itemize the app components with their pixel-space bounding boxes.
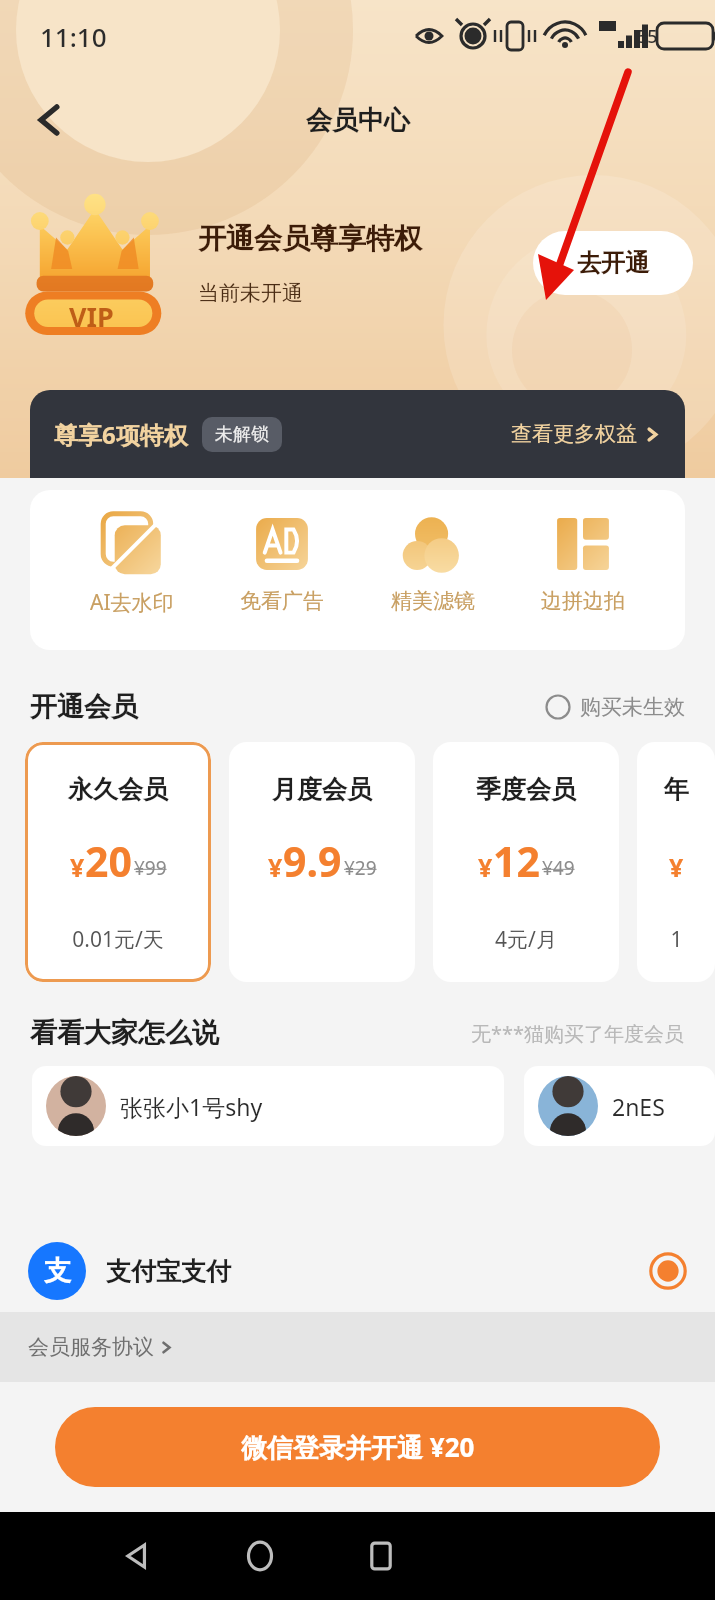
button[interactable]: Purchase not active help [545,694,685,720]
button[interactable]: 年 [637,742,715,982]
staticText: 免看广告 [240,588,324,614]
staticText: 永久会员 [68,774,168,805]
staticText: ¥ [669,850,684,884]
staticText: 0.01元/天 [72,925,164,954]
staticText: 2nES [612,1091,665,1122]
staticText: 年 [664,774,689,805]
button[interactable]: Back [24,94,76,146]
staticText: 月度会员 [272,774,372,805]
button[interactable]: 张张小1号shy [32,1066,504,1146]
staticText: VIP [69,298,114,335]
staticText: 会员服务协议 [28,1334,154,1360]
staticText: 未解锁 [215,423,269,446]
staticText: 支付宝支付 [106,1256,231,1287]
staticText: 尊享6项特权 [54,418,188,451]
staticText: 看看大家怎么说 [30,1016,219,1050]
staticText: 55 [637,24,658,49]
staticText: 边拼边拍 [541,588,625,614]
button[interactable]: Select Alipay [649,1252,687,1290]
staticText: ¥99 [134,855,167,881]
staticText: 无***猫购买了年度会员 [471,1020,685,1047]
staticText: 会员中心 [306,104,410,137]
staticText: 4元/月 [495,925,557,954]
button[interactable]: 永久会员 [25,742,211,982]
staticText: ¥29 [344,855,377,881]
staticText: ¥ [478,850,493,884]
button[interactable]: 免看广告 [234,508,330,614]
button[interactable]: AI去水印 [84,508,180,617]
button[interactable]: 精美滤镜 [385,508,481,614]
staticText: 20 [85,833,132,889]
button[interactable]: Back [115,1533,161,1579]
staticText: 开通会员 [30,690,138,724]
button[interactable]: 2nES [524,1066,715,1146]
staticText: 精美滤镜 [391,588,475,614]
staticText: 张张小1号shy [120,1091,263,1122]
staticText: 1 [670,925,683,954]
button[interactable]: 微信登录并开通 ¥20 [55,1407,660,1487]
staticText: 当前未开通 [198,280,303,306]
button[interactable]: 支 [28,1230,687,1312]
staticText: 微信登录并开通 ¥20 [241,1429,475,1465]
staticText: 购买未生效 [580,694,685,720]
staticText: AI去水印 [90,588,174,617]
staticText: 12 [493,833,540,889]
staticText: 查看更多权益 [511,421,637,447]
button[interactable]: 会员服务协议 [28,1312,715,1382]
staticText: ¥ [70,850,85,884]
staticText: 11:10 [40,19,107,54]
button[interactable]: Recents [358,1533,404,1579]
staticText: ¥49 [542,855,575,881]
staticText: 去开通 [577,248,649,278]
button[interactable]: 尊享6项特权 [30,390,685,478]
button[interactable]: Home [237,1533,283,1579]
button[interactable]: 季度会员 [433,742,619,982]
staticText: 支 [44,1254,71,1288]
button[interactable]: 月度会员 [229,742,415,982]
button[interactable]: 去开通 [533,231,693,295]
staticText: ¥ [268,850,283,884]
staticText: 季度会员 [476,774,576,805]
staticText: 开通会员尊享特权 [198,221,422,256]
staticText: 9.9 [283,833,342,889]
button[interactable]: 边拼边拍 [535,508,631,614]
